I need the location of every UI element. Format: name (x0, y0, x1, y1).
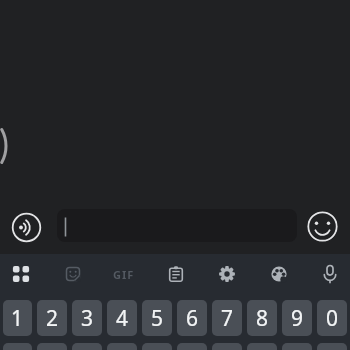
staticText: 3 (81, 304, 94, 333)
button[interactable]: GIF (109, 259, 139, 289)
button[interactable]: 8 (247, 300, 277, 336)
button[interactable] (142, 343, 172, 350)
staticText: 8 (256, 304, 269, 333)
button[interactable] (6, 259, 36, 289)
button[interactable] (212, 259, 242, 289)
button[interactable]: 6 (177, 300, 207, 336)
button[interactable] (282, 343, 312, 350)
button[interactable] (72, 343, 102, 350)
button[interactable] (107, 343, 137, 350)
button[interactable]: 9 (282, 300, 312, 336)
button[interactable] (247, 343, 277, 350)
button[interactable] (57, 209, 297, 242)
button[interactable]: 5 (142, 300, 172, 336)
button[interactable] (315, 259, 345, 289)
button[interactable] (212, 343, 242, 350)
button[interactable] (177, 343, 207, 350)
staticText: 6 (186, 304, 199, 333)
button[interactable] (58, 259, 88, 289)
staticText: GIF (113, 267, 135, 282)
button[interactable]: 2 (37, 300, 67, 336)
button[interactable] (264, 259, 294, 289)
button[interactable]: 3 (72, 300, 102, 336)
button[interactable]: 4 (107, 300, 137, 336)
button[interactable] (307, 211, 338, 242)
button[interactable]: 0 (317, 300, 347, 336)
staticText: 2 (46, 304, 59, 333)
button[interactable] (317, 343, 347, 350)
staticText: 5 (151, 304, 164, 333)
button[interactable]: 7 (212, 300, 242, 336)
button[interactable]: 1 (3, 300, 32, 336)
staticText: 9 (291, 304, 304, 333)
button[interactable] (37, 343, 67, 350)
button[interactable] (11, 212, 42, 243)
staticText: 7 (221, 304, 234, 333)
staticText: 0 (326, 304, 339, 333)
button[interactable] (161, 259, 191, 289)
staticText: 1 (11, 304, 24, 333)
staticText: 4 (116, 304, 129, 333)
button[interactable] (3, 343, 32, 350)
